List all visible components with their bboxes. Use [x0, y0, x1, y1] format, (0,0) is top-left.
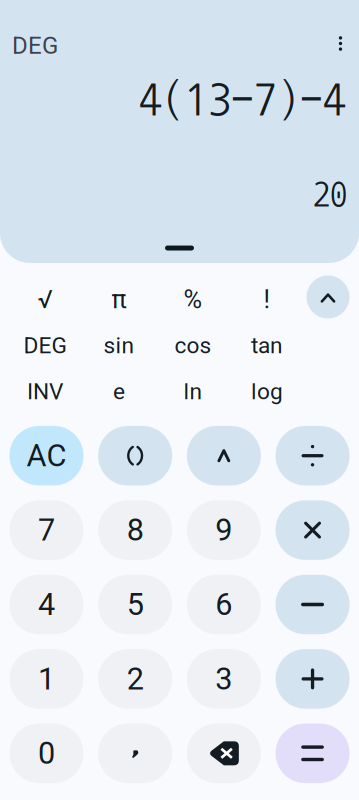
button[interactable]: 2	[98, 649, 172, 709]
staticText: DEG	[23, 332, 66, 359]
button[interactable]: 3	[187, 649, 261, 709]
button[interactable]: tan	[230, 322, 304, 368]
button[interactable]	[276, 426, 350, 485]
button[interactable]: !	[230, 276, 304, 322]
button[interactable]: 4	[9, 575, 83, 634]
button[interactable]: DEG	[8, 322, 82, 368]
staticText: AC	[26, 438, 66, 474]
staticText: π	[111, 285, 126, 314]
button[interactable]	[187, 723, 261, 783]
button[interactable]: √	[8, 276, 82, 322]
button[interactable]: 5	[98, 575, 172, 634]
staticText: 5	[127, 586, 144, 622]
staticText: 0	[38, 735, 55, 771]
staticText: 4(13-7)-4	[139, 77, 346, 123]
staticText: 6	[215, 586, 232, 622]
staticText: √	[37, 285, 52, 314]
button[interactable]: 0	[9, 723, 83, 783]
button[interactable]	[98, 426, 172, 485]
button[interactable]	[276, 649, 350, 709]
button[interactable]: log	[230, 368, 304, 414]
button[interactable]: AC	[9, 426, 83, 485]
staticText: 3	[215, 661, 232, 697]
button[interactable]: INV	[8, 368, 82, 414]
staticText: 9	[215, 512, 232, 548]
staticText: 7	[38, 512, 55, 548]
staticText: ln	[183, 378, 202, 405]
button[interactable]	[276, 723, 350, 783]
staticText: log	[251, 378, 283, 405]
staticText: tan	[251, 332, 283, 359]
button[interactable]: 6	[187, 575, 261, 634]
staticText: cos	[174, 332, 211, 359]
staticText: 2	[127, 661, 144, 697]
button[interactable]: More options	[322, 25, 358, 61]
button[interactable]: Collapse keypad	[306, 275, 349, 318]
staticText: %	[183, 285, 202, 314]
staticText: e	[113, 378, 125, 405]
staticText: DEG	[12, 31, 58, 59]
button[interactable]: π	[82, 276, 156, 322]
button[interactable]: sin	[82, 322, 156, 368]
staticText: 4	[38, 586, 55, 622]
staticText: !	[263, 285, 270, 314]
staticText: sin	[103, 332, 134, 359]
button[interactable]	[98, 723, 172, 783]
button[interactable]: 1	[9, 649, 83, 709]
button[interactable]	[276, 500, 350, 560]
button[interactable]: 7	[9, 500, 83, 560]
staticText: INV	[27, 378, 63, 405]
button[interactable]	[187, 426, 261, 485]
staticText: 1	[38, 661, 55, 697]
button[interactable]: DEG	[12, 30, 72, 60]
button[interactable]	[276, 575, 350, 634]
button[interactable]: 9	[187, 500, 261, 560]
staticText: 20	[313, 177, 347, 211]
button[interactable]: %	[156, 276, 230, 322]
button[interactable]: cos	[156, 322, 230, 368]
button[interactable]: 8	[98, 500, 172, 560]
button[interactable]: ln	[156, 368, 230, 414]
staticText: 8	[127, 512, 144, 548]
button[interactable]: e	[82, 368, 156, 414]
